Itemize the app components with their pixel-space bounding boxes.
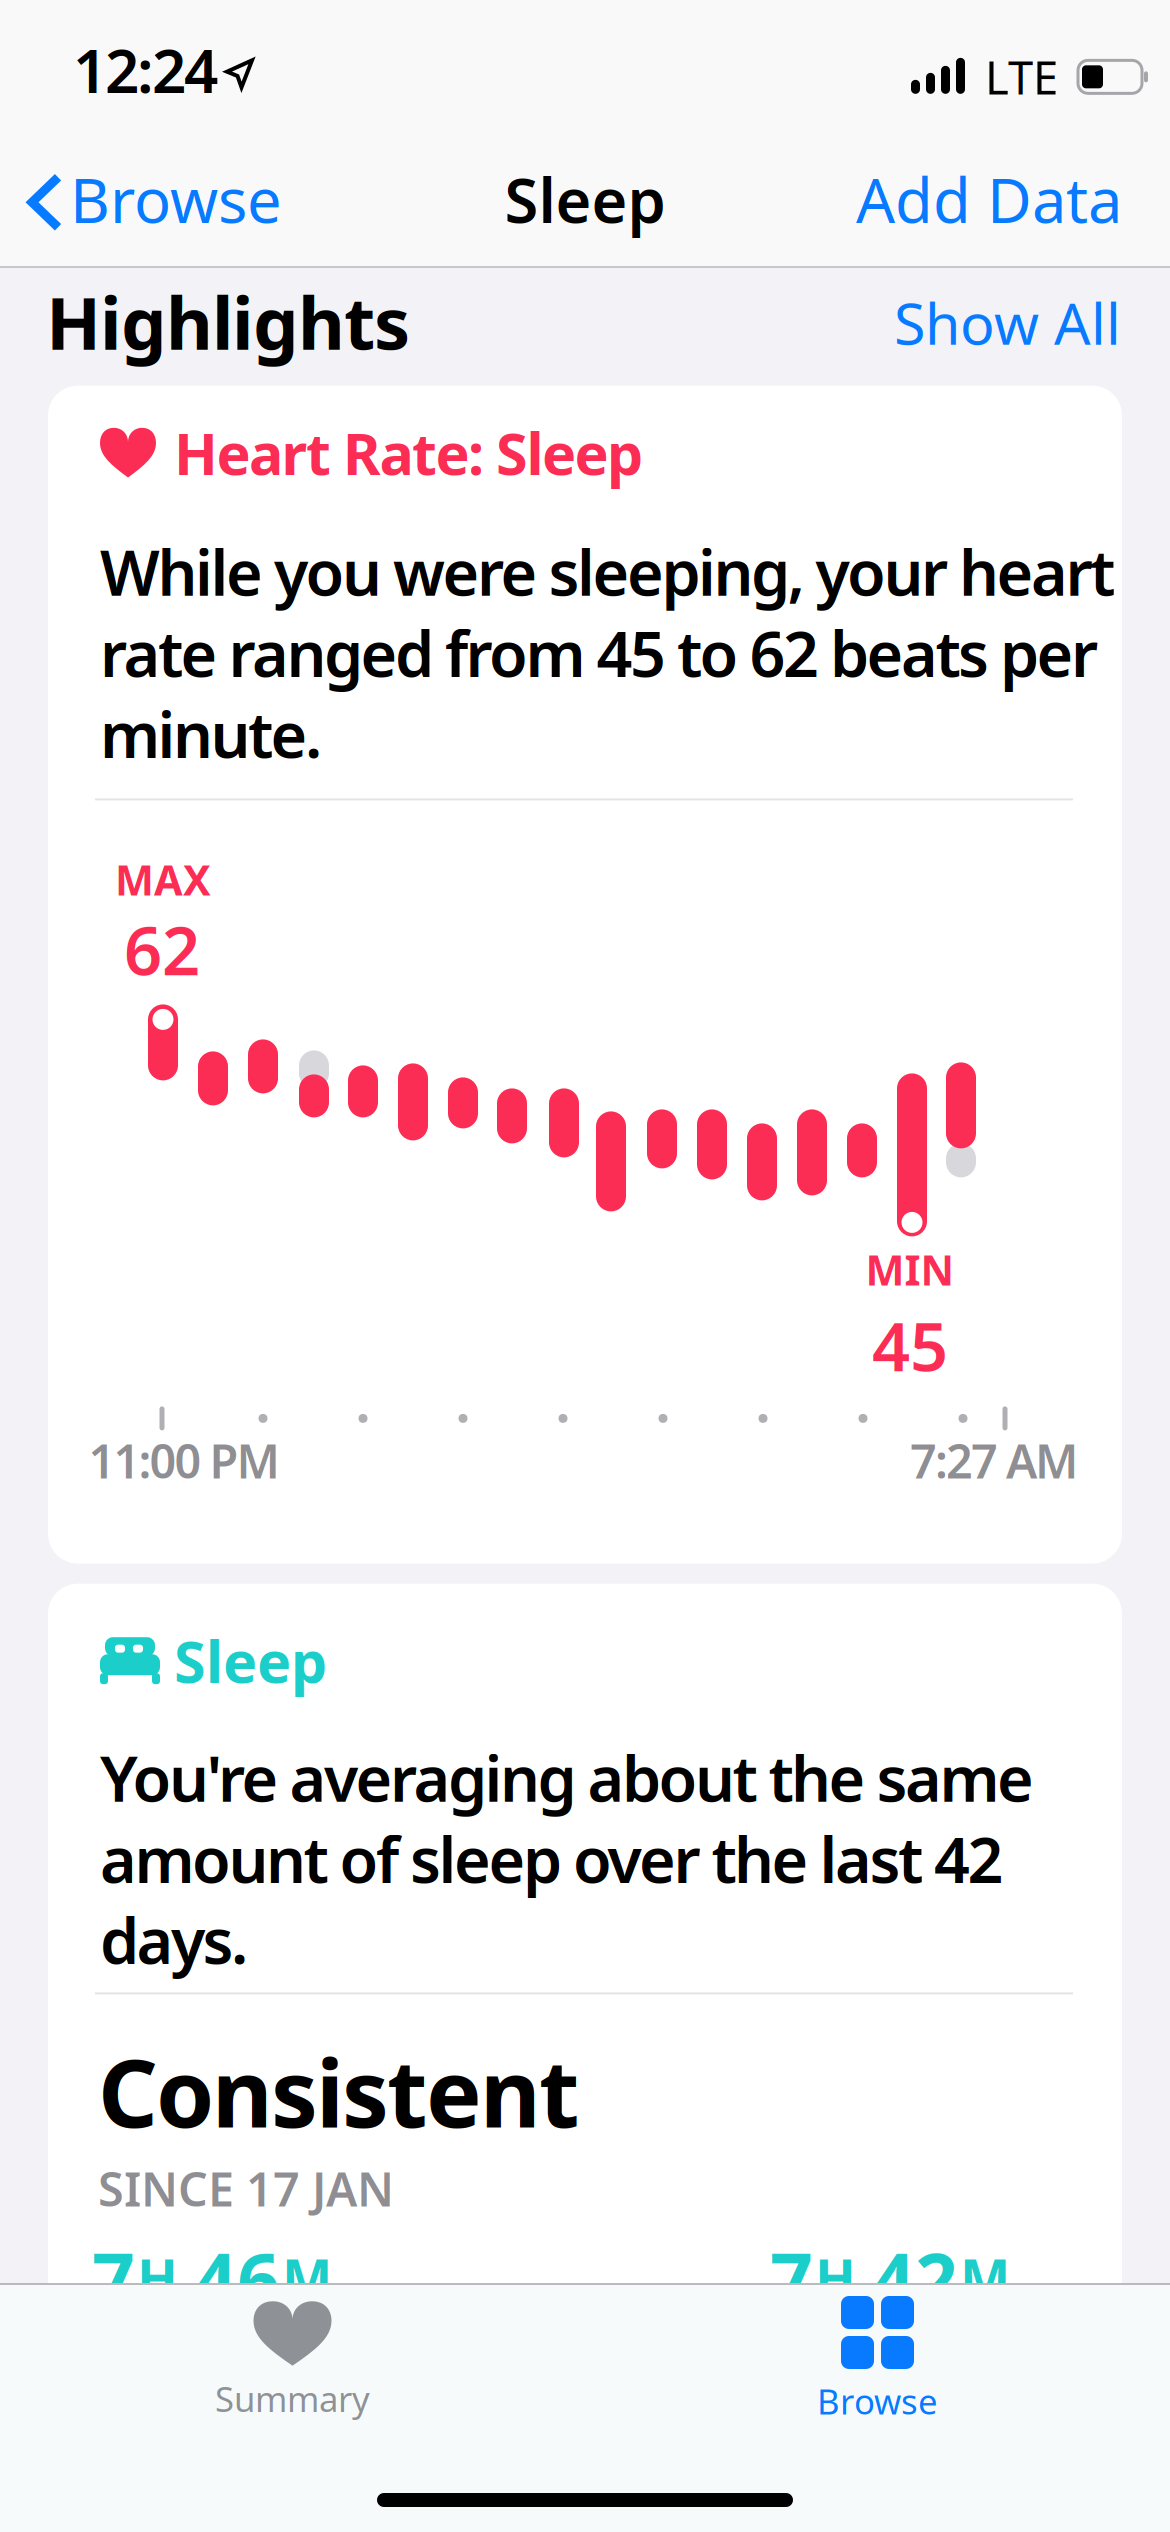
staticText: Show All [894,284,1121,360]
button[interactable]: Add Data [856,159,1122,240]
staticText: Sleep [504,159,665,240]
staticText: MIN [865,1242,954,1297]
staticText: 46 [194,2229,280,2328]
staticText: You're averaging about the same [100,1736,1034,1819]
staticText: 42 [872,2229,958,2328]
staticText: Sleep [174,1623,327,1699]
staticText: 11:00 PM [88,1429,279,1491]
staticText: LTE [985,47,1058,107]
button[interactable]: Heart Rate: Sleep [48,386,1122,1564]
staticText: minute. [100,692,322,775]
staticText: MAX [115,852,211,907]
staticText: Highlights [46,274,410,370]
staticText: 7 [92,2229,135,2328]
staticText: Heart Rate: Sleep [174,415,643,491]
button[interactable]: Browse [585,2296,1170,2424]
staticText: 45 [872,1301,948,1390]
staticText: rate ranged from 45 to 62 beats per [100,611,1098,694]
staticText: SINCE 17 JAN [98,2157,394,2219]
staticText: M [960,2242,1010,2313]
staticText: M [282,2242,332,2313]
button[interactable]: Show All [894,284,1121,360]
staticText: Browse [817,2378,938,2424]
staticText: H [815,2242,870,2313]
staticText: 7:27 AM [910,1429,1078,1491]
staticText: days. [100,1898,248,1981]
staticText: Consistent [98,2029,580,2153]
staticText: 7 [770,2229,813,2328]
staticText: Add Data [856,159,1122,240]
button[interactable]: Sleep [48,1584,1122,2344]
staticText: While you were sleeping, your heart [100,530,1115,613]
staticText: H [137,2242,192,2313]
button[interactable]: Summary [0,2298,585,2421]
staticText: amount of sleep over the last 42 [100,1817,1003,1900]
staticText: 12:24 [73,30,218,110]
staticText: Browse [70,159,282,240]
staticText: Summary [215,2375,370,2421]
staticText: 62 [124,905,200,994]
button[interactable]: Browse [32,159,282,240]
